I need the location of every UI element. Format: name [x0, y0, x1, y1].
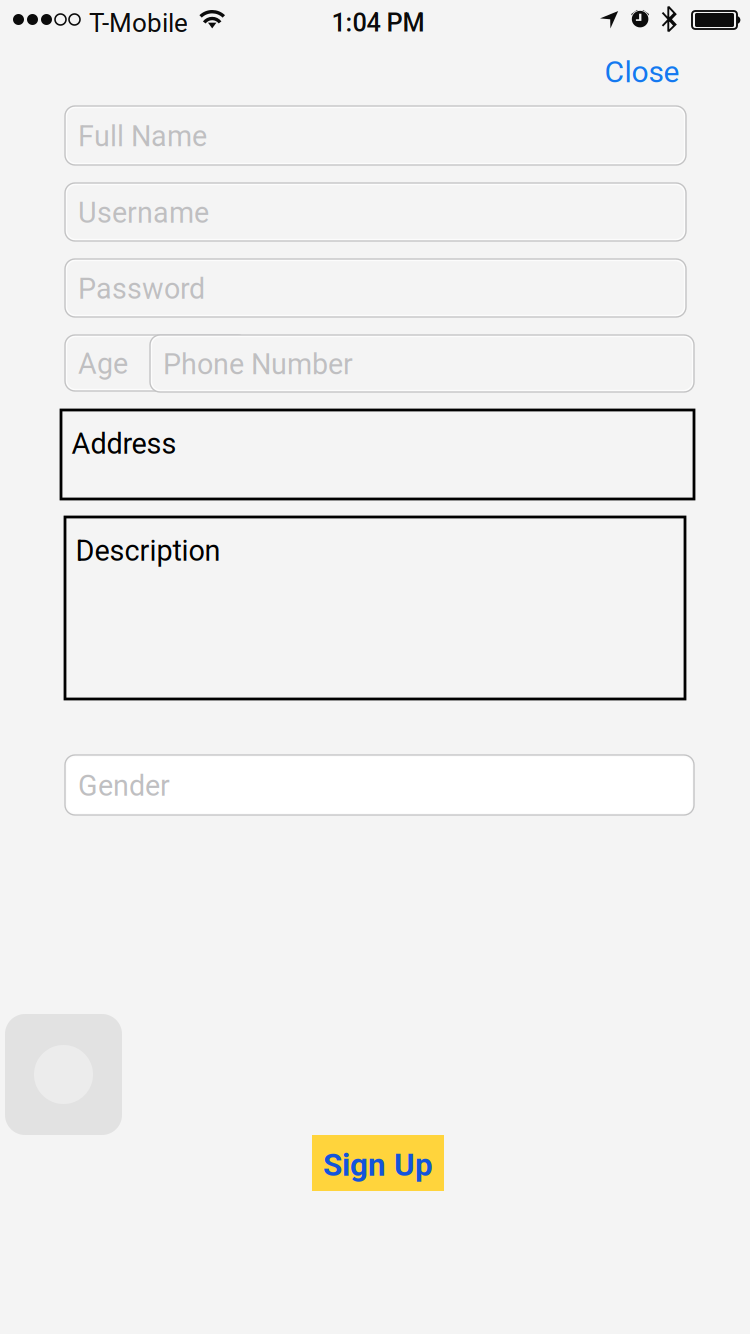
- button[interactable]: Age: [65, 335, 248, 391]
- button[interactable]: Phone Number: [150, 335, 694, 392]
- staticText: 1:04 PM: [331, 8, 424, 38]
- staticText: Age: [78, 347, 128, 381]
- staticText: Phone Number: [163, 348, 353, 381]
- button[interactable]: Full Name: [65, 106, 686, 165]
- button[interactable]: Password: [65, 259, 686, 317]
- button[interactable]: Sign Up: [312, 1135, 444, 1191]
- button[interactable]: Username: [65, 183, 686, 241]
- staticText: Sign Up: [323, 1147, 433, 1183]
- button[interactable]: Gender: [65, 755, 694, 815]
- staticText: T-Mobile: [89, 8, 188, 38]
- staticText: Username: [78, 196, 209, 230]
- staticText: Close: [604, 54, 679, 90]
- staticText: Address: [71, 427, 176, 461]
- button[interactable]: Close: [584, 44, 700, 100]
- button[interactable]: Description: [65, 517, 685, 699]
- staticText: Full Name: [78, 120, 207, 153]
- button[interactable]: Address: [61, 410, 694, 499]
- staticText: Gender: [78, 769, 170, 803]
- staticText: Description: [75, 534, 220, 568]
- staticText: Password: [78, 272, 205, 306]
